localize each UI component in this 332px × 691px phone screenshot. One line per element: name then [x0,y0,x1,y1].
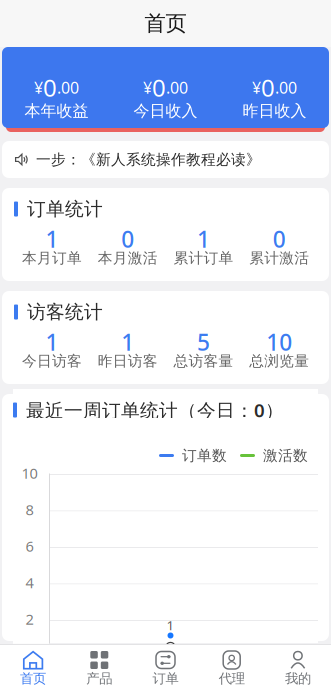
staticText: 订单数 [174,446,227,464]
staticText: .00 [166,77,188,98]
staticText: 本月订单 [22,249,82,267]
staticText: 最近一周订单统计（今日：0） [26,398,284,422]
staticText: ¥ [252,77,261,98]
staticText: 总访客量 [173,352,233,370]
staticText: 今日收入 [133,101,197,121]
staticText: 10 [21,463,37,483]
staticText: 0 [261,72,275,103]
button[interactable]: 我的 [265,645,331,691]
button[interactable]: 产品 [66,645,132,691]
staticText: 1 [197,224,210,254]
staticText: 5 [197,327,210,357]
staticText: 订单统计 [27,197,103,220]
staticText: 1 [121,327,134,357]
staticText: 1 [45,224,58,254]
staticText: 1 [45,327,58,357]
button[interactable]: 首页 [0,645,66,691]
staticText: 0 [43,72,57,103]
staticText: 订单 [152,670,178,687]
staticText: 10 [266,327,292,357]
staticText: 昨日访客 [98,352,158,370]
staticText: 总浏览量 [249,352,309,370]
staticText: 8 [25,500,33,519]
staticText: 0 [121,224,134,254]
staticText: .00 [275,77,297,98]
staticText: 激活数 [255,446,308,464]
staticText: 我的 [285,670,311,687]
staticText: 一步：《新人系统操作教程必读》 [36,150,261,168]
staticText: 今日访客 [22,352,82,370]
staticText: 0 [152,72,166,103]
staticText: ¥ [34,77,43,98]
staticText: 昨日收入 [242,101,306,121]
staticText: 2 [25,609,33,629]
staticText: 首页 [20,670,46,687]
staticText: .00 [57,77,79,98]
staticText: 访客统计 [27,300,103,323]
staticText: 代理 [219,670,245,687]
staticText: ¥ [143,77,152,98]
staticText: 首页 [144,10,186,37]
button[interactable]: 代理 [199,645,265,691]
staticText: 本月激活 [98,249,158,267]
staticText: 4 [25,573,33,592]
staticText: 累计订单 [173,249,233,267]
staticText: 6 [25,536,33,556]
staticText: 0 [273,224,286,254]
button[interactable]: 订单 [132,645,199,691]
staticText: 本年收益 [24,101,88,121]
staticText: 累计激活 [249,249,309,267]
staticText: 产品 [86,670,112,687]
staticText: 1 [166,616,174,634]
